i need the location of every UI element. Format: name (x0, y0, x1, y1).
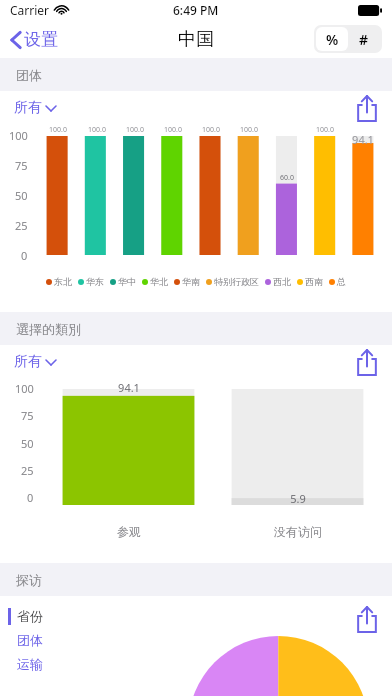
staticText: 省份 (17, 608, 43, 624)
button[interactable]: 华中 (110, 276, 136, 287)
staticText: 94.1 (352, 132, 374, 147)
staticText: 100.0 (164, 125, 182, 135)
button[interactable]: 团体 (17, 628, 43, 652)
staticText: 100 (9, 128, 28, 143)
button[interactable]: # (348, 27, 380, 51)
staticText: 94.1 (118, 380, 140, 395)
staticText: 团体 (17, 632, 43, 648)
staticText: 5.9 (290, 491, 306, 506)
staticText: % (326, 30, 339, 49)
button[interactable]: 华东 (78, 276, 104, 287)
button[interactable]: 省份 (8, 604, 43, 628)
staticText: 设置 (24, 29, 58, 50)
staticText: 特别行政区 (214, 276, 259, 287)
staticText: 华东 (86, 276, 104, 287)
button[interactable]: Share (354, 347, 380, 377)
staticText: # (359, 30, 369, 49)
staticText: 探访 (16, 572, 42, 588)
button[interactable]: 东北 (46, 276, 72, 287)
staticText: 参观 (117, 524, 141, 539)
staticText: 100 (15, 381, 34, 396)
button[interactable]: 设置 (10, 29, 58, 50)
button[interactable]: 所有 (14, 99, 56, 117)
staticText: 75 (21, 408, 34, 423)
button[interactable]: 总 (329, 276, 346, 287)
button[interactable]: 华北 (142, 276, 168, 287)
staticText: 100.0 (126, 125, 144, 135)
staticText: 华南 (182, 276, 200, 287)
staticText: 所有 (14, 99, 42, 117)
button[interactable]: 华南 (174, 276, 200, 287)
staticText: 100.0 (88, 125, 106, 135)
staticText: 100.0 (49, 125, 67, 135)
button[interactable]: 所有 (14, 353, 56, 371)
staticText: 50 (21, 436, 34, 451)
staticText: 100.0 (240, 125, 258, 135)
staticText: 選擇的類別 (16, 321, 81, 337)
button[interactable]: Share (354, 604, 380, 634)
staticText: 25 (15, 218, 28, 233)
staticText: 0 (21, 248, 28, 263)
staticText: 东北 (54, 276, 72, 287)
button[interactable]: 运输 (17, 652, 43, 676)
staticText: 50 (15, 188, 28, 203)
staticText: 运输 (17, 656, 43, 672)
staticText: 团体 (16, 67, 42, 83)
staticText: 75 (15, 158, 28, 173)
staticText: 华中 (118, 276, 136, 287)
staticText: 60.0 (280, 173, 294, 183)
button[interactable]: 西北 (265, 276, 291, 287)
staticText: 6:49 PM (173, 2, 219, 18)
staticText: 所有 (14, 353, 42, 371)
staticText: 西北 (273, 276, 291, 287)
staticText: 华北 (150, 276, 168, 287)
staticText: 中国 (178, 28, 214, 51)
staticText: 没有访问 (274, 524, 322, 539)
button[interactable]: 特别行政区 (206, 276, 259, 287)
staticText: 0 (27, 490, 34, 505)
button[interactable]: Share (354, 93, 380, 123)
staticText: Carrier (10, 2, 50, 18)
staticText: 100.0 (316, 125, 334, 135)
button[interactable]: % (316, 27, 348, 51)
button[interactable]: 西南 (297, 276, 323, 287)
staticText: 总 (337, 276, 346, 287)
staticText: 25 (21, 463, 34, 478)
staticText: 100.0 (202, 125, 220, 135)
staticText: 西南 (305, 276, 323, 287)
